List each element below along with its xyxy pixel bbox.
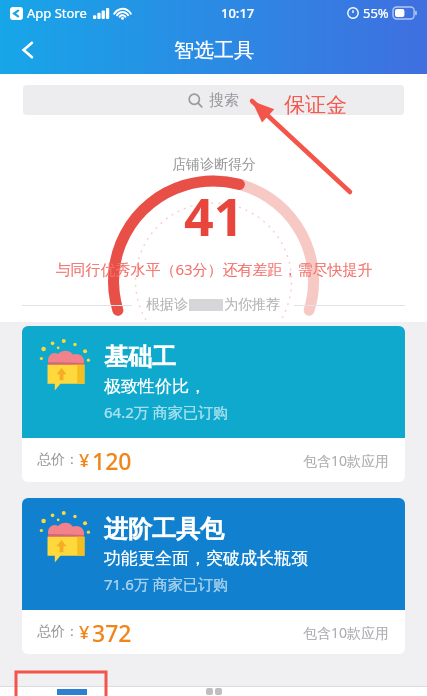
staticText: ¥ (79, 620, 90, 645)
staticText: 与同行优秀水平（63分）还有差距，需尽快提升 (55, 259, 373, 279)
staticText: 保证金 (284, 92, 347, 118)
staticText: 总价： (37, 451, 79, 469)
staticText: App Store (27, 4, 87, 22)
staticText: 包含10款应用 (303, 451, 390, 470)
button[interactable]: 基础工 (22, 326, 405, 482)
staticText: 根据诊 (146, 296, 188, 314)
staticText: 64.2万 商家已订购 (104, 402, 228, 422)
staticText: 智选工具 (174, 38, 254, 63)
button[interactable]: Back (6, 28, 50, 72)
button[interactable]: Home (0, 687, 143, 696)
staticText: 店铺诊断得分 (172, 156, 256, 174)
button[interactable]: 进阶工具包 (22, 498, 405, 654)
button[interactable]: Discover (143, 687, 285, 696)
staticText: 搜索 (209, 91, 239, 110)
staticText: 120 (92, 445, 132, 476)
staticText: 基础工 (104, 342, 176, 372)
staticText: 41 (184, 180, 244, 251)
staticText: 极致性价比， (104, 376, 206, 397)
staticText: 55% (363, 4, 389, 22)
staticText: ¥ (79, 448, 90, 473)
staticText: 进阶工具包 (104, 514, 224, 544)
staticText: 为你推荐 (224, 296, 280, 314)
staticText: 71.6万 商家已订购 (104, 574, 228, 594)
staticText: 总价： (37, 623, 79, 641)
staticText: 10:17 (221, 4, 255, 22)
staticText: 功能更全面，突破成长瓶颈 (104, 548, 308, 569)
staticText: 包含10款应用 (303, 623, 390, 642)
button[interactable]: 搜索 (23, 85, 404, 115)
staticText: 372 (92, 617, 132, 648)
